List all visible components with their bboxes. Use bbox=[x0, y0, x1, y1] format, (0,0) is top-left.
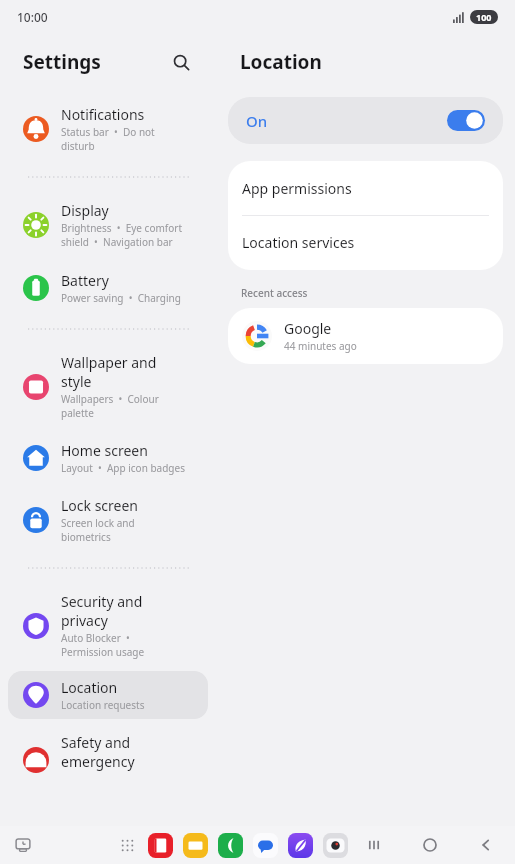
button[interactable]: Recents bbox=[357, 828, 391, 862]
button[interactable]: Back bbox=[469, 828, 503, 862]
staticText: Wallpapers • Colour palette bbox=[61, 392, 159, 420]
staticText: Safety and emergency bbox=[61, 733, 135, 771]
button[interactable]: Recent apps panel bbox=[10, 832, 36, 858]
staticText: Wallpaper and style bbox=[61, 353, 157, 391]
staticText: Security and privacy bbox=[61, 592, 143, 630]
staticText: Location bbox=[61, 678, 118, 697]
staticText: Recent access bbox=[241, 286, 308, 300]
staticText: 100 bbox=[476, 11, 492, 23]
staticText: Status bar • Do not disturb bbox=[61, 125, 155, 153]
button[interactable]: Home bbox=[413, 828, 447, 862]
staticText: Google bbox=[284, 319, 332, 338]
staticText: On bbox=[246, 111, 268, 131]
button[interactable]: Wallpaper and style bbox=[8, 346, 208, 427]
button[interactable]: Lock screen bbox=[8, 489, 208, 551]
button[interactable]: Samsung Notes bbox=[146, 831, 175, 860]
staticText: Auto Blocker • Permission usage bbox=[61, 631, 145, 659]
staticText: Home screen bbox=[61, 441, 148, 460]
button[interactable]: My Files bbox=[181, 831, 210, 860]
button[interactable]: App permissions bbox=[228, 161, 503, 215]
button[interactable]: Messages bbox=[251, 831, 280, 860]
staticText: Brightness • Eye comfort shield • Naviga… bbox=[61, 221, 183, 249]
staticText: Notifications bbox=[61, 105, 145, 124]
staticText: 44 minutes ago bbox=[284, 339, 357, 353]
button[interactable]: All apps bbox=[114, 832, 140, 858]
staticText: App permissions bbox=[242, 179, 352, 198]
staticText: Layout • App icon badges bbox=[61, 461, 185, 475]
staticText: Location services bbox=[242, 233, 355, 252]
button[interactable]: Google bbox=[228, 308, 503, 364]
button[interactable]: Location bbox=[8, 671, 208, 719]
button[interactable]: Battery bbox=[8, 264, 208, 312]
staticText: Location bbox=[240, 49, 322, 75]
button[interactable]: Display bbox=[8, 194, 208, 256]
button[interactable]: On bbox=[228, 97, 503, 144]
staticText: Screen lock and biometrics bbox=[61, 516, 135, 544]
staticText: 10:00 bbox=[17, 9, 48, 25]
staticText: Location requests bbox=[61, 698, 145, 712]
staticText: Power saving • Charging bbox=[61, 291, 181, 305]
staticText: Settings bbox=[23, 49, 101, 75]
button[interactable]: Security and privacy bbox=[8, 585, 208, 666]
staticText: Lock screen bbox=[61, 496, 139, 515]
button[interactable]: Phone bbox=[216, 831, 245, 860]
button[interactable]: Safety and emergency bbox=[8, 726, 208, 793]
button[interactable]: Camera bbox=[321, 831, 350, 860]
button[interactable]: Home screen bbox=[8, 434, 208, 482]
button[interactable]: Location services bbox=[228, 216, 503, 270]
staticText: Battery bbox=[61, 271, 109, 290]
staticText: Display bbox=[61, 201, 109, 220]
button[interactable]: Notifications bbox=[8, 98, 208, 160]
button[interactable]: Samsung Internet bbox=[286, 831, 315, 860]
button[interactable]: Search bbox=[166, 47, 196, 77]
